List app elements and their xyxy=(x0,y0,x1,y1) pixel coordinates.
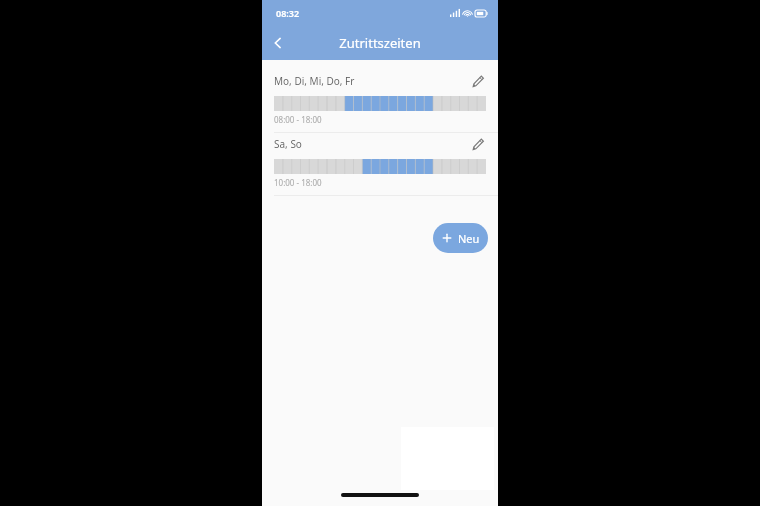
staticText: Zutrittszeiten xyxy=(339,34,421,52)
staticText: Mo, Di, Mi, Do, Fr xyxy=(274,74,355,88)
button[interactable]: Edit xyxy=(466,70,490,92)
button[interactable]: Back xyxy=(262,27,294,59)
button[interactable]: Edit xyxy=(466,133,490,155)
staticText: 10:00 - 18:00 xyxy=(274,177,322,188)
staticText: Neu xyxy=(458,231,480,246)
button[interactable]: Neu xyxy=(433,223,488,253)
staticText: Sa, So xyxy=(274,137,302,151)
staticText: 08:32 xyxy=(276,7,300,19)
staticText: 08:00 - 18:00 xyxy=(274,114,322,125)
